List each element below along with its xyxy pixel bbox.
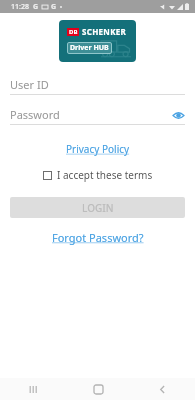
staticText: Driver HUB xyxy=(70,43,109,53)
button[interactable]: Home xyxy=(87,378,109,400)
button[interactable]: Forgot Password? xyxy=(48,228,148,247)
staticText: SCHENKER xyxy=(82,26,127,37)
staticText: Password xyxy=(10,107,60,122)
button[interactable]: Recent apps xyxy=(22,378,44,400)
button[interactable]: I accept these terms xyxy=(39,166,157,184)
staticText: Forgot Password? xyxy=(52,230,144,245)
button[interactable]: User ID xyxy=(10,76,185,93)
staticText: G xyxy=(51,2,57,12)
staticText: LOGIN xyxy=(82,201,114,215)
button[interactable]: Privacy Policy xyxy=(62,140,134,158)
button[interactable]: Show password xyxy=(171,108,185,122)
staticText: 11:28 xyxy=(11,2,29,12)
staticText: G xyxy=(33,2,39,12)
staticText: Privacy Policy xyxy=(66,142,130,156)
button[interactable]: Password xyxy=(10,106,185,123)
staticText: User ID xyxy=(10,77,49,92)
staticText: I accept these terms xyxy=(57,168,153,182)
staticText: DB xyxy=(69,28,78,36)
button[interactable]: Back xyxy=(151,378,173,400)
button[interactable]: LOGIN xyxy=(10,197,185,218)
